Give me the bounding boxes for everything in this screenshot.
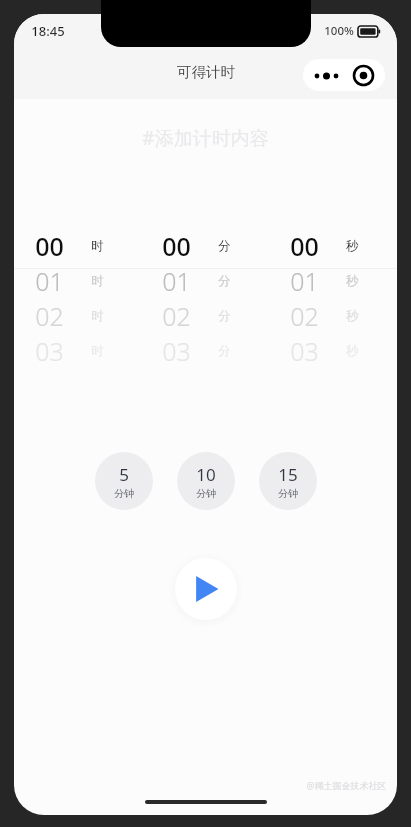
staticText: 18:45 [31,22,65,40]
button[interactable]: #添加计时内容 [14,121,397,155]
button[interactable]: More options [303,59,385,91]
staticText: 03 [290,334,319,368]
staticText: 00 [162,229,191,263]
button[interactable]: 5 [95,452,153,510]
button[interactable]: More options [314,66,340,86]
staticText: 00 [290,229,319,263]
button[interactable]: 00 [269,228,397,378]
staticText: 分 [218,308,231,324]
staticText: 时 [91,238,104,254]
button[interactable]: Start timer [175,558,237,620]
staticText: 03 [35,334,64,368]
staticText: 02 [290,299,319,333]
staticText: 时 [91,343,104,359]
staticText: 可得计时 [177,63,235,81]
staticText: 分 [218,343,231,359]
button[interactable]: Record [353,65,374,86]
staticText: 15 [278,463,298,486]
staticText: 秒 [346,273,359,289]
staticText: 分钟 [278,487,298,500]
staticText: 01 [35,264,64,298]
staticText: 5 [119,463,129,486]
staticText: 分钟 [196,487,216,500]
staticText: 01 [162,264,191,298]
staticText: #添加计时内容 [142,125,269,151]
button[interactable]: 00 [14,228,141,378]
staticText: 时 [91,308,104,324]
button[interactable]: 10 [177,452,235,510]
button[interactable]: 00 [141,228,269,378]
staticText: 01 [290,264,319,298]
staticText: 分 [218,238,231,254]
staticText: 秒 [346,308,359,324]
staticText: 时 [91,273,104,289]
staticText: @稀土掘金技术社区 [306,779,387,791]
staticText: 10 [196,463,216,486]
staticText: 100% [324,23,354,39]
staticText: 秒 [346,343,359,359]
staticText: 03 [162,334,191,368]
staticText: 分 [218,273,231,289]
staticText: 02 [35,299,64,333]
staticText: 分钟 [114,487,134,500]
staticText: 秒 [346,238,359,254]
staticText: 02 [162,299,191,333]
button[interactable]: 15 [259,452,317,510]
staticText: 00 [35,229,64,263]
